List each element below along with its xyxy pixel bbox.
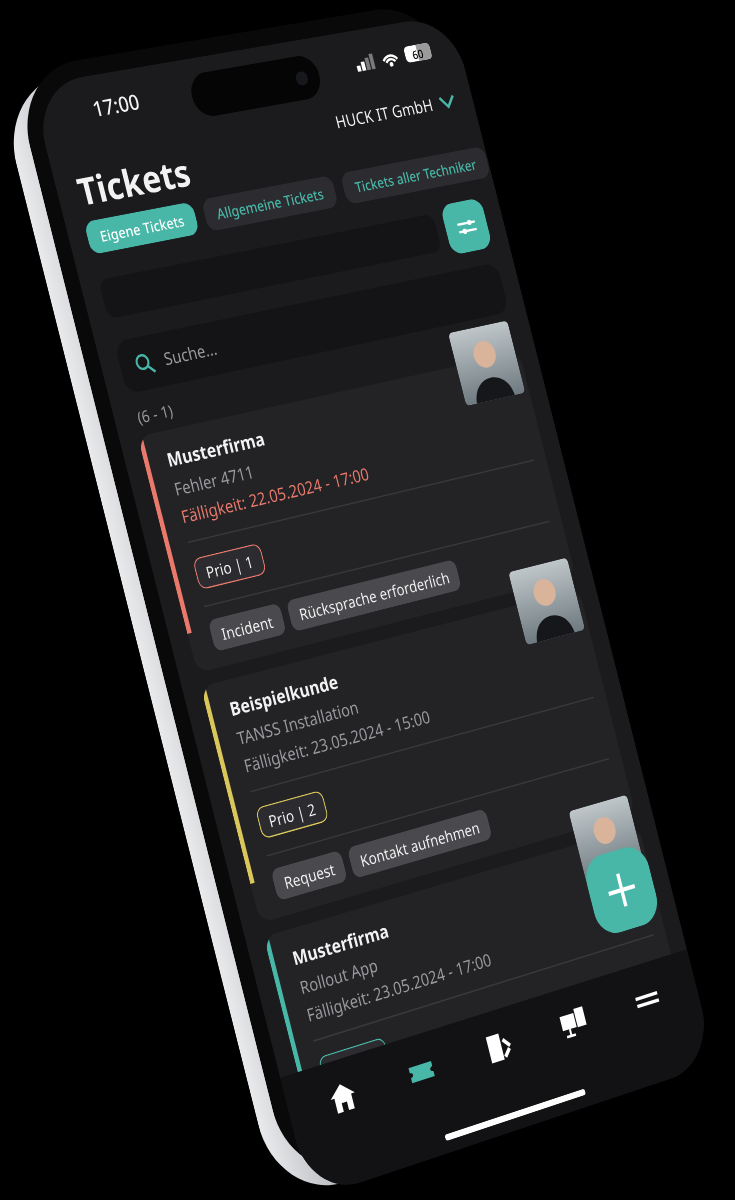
staticText: Tickets aller Techniker [353,154,478,196]
button[interactable]: Beispielkunde [200,589,636,923]
staticText: Tickets [72,146,196,216]
staticText: Beispielkunde [227,668,341,721]
staticText: Allgemeine Tickets [214,183,326,223]
button[interactable]: Tickets aller Techniker [340,146,491,205]
button[interactable]: Suche... [114,262,509,394]
staticText: 17:00 [89,87,142,124]
staticText: Prio | 1 [203,550,256,583]
staticText: (6 - 1) [135,399,176,428]
button[interactable]: Tickets [388,1033,455,1112]
button[interactable]: Request [270,850,348,901]
staticText: Rollout App [297,953,380,1000]
button[interactable]: Rücksprache erforderlich [286,559,462,632]
button[interactable]: Menü [616,962,679,1037]
button[interactable] [98,213,442,319]
staticText: Musterfirma [290,917,391,971]
button[interactable]: Prio | 2 [255,790,329,840]
button[interactable]: Musterfirma [138,352,576,673]
button[interactable]: Eigene Tickets [84,201,200,255]
button[interactable]: Neues Ticket [581,842,662,938]
button[interactable]: Incident [333,1096,411,1151]
staticText: Musterfirma [164,426,267,472]
button[interactable]: Home [309,1058,377,1137]
staticText: Incident [219,610,276,644]
button[interactable]: Bearbeiten [466,1009,531,1086]
staticText: Prio | 2 [266,797,318,831]
staticText: Request [282,858,337,893]
staticText: Fälligkeit: 23.05.2024 - 15:00 [241,704,432,778]
staticText: Fälligkeit: 23.05.2024 - 17:00 [304,947,494,1027]
staticText: Rücksprache erforderlich [297,566,451,624]
staticText: 60 [410,45,425,62]
staticText: TANSS Installation [234,695,361,750]
button[interactable]: Filter [440,197,493,256]
button[interactable]: Incident [208,603,287,652]
staticText: Prio | 3 [329,1045,381,1080]
button[interactable]: Kontakt aufnehmen [347,808,493,879]
button[interactable]: Prio | 1 [192,543,267,590]
staticText: Incident [344,1105,400,1142]
staticText: HUCK IT GmbH [333,93,436,134]
button[interactable]: Prio | 3 [318,1037,392,1089]
button[interactable]: Musterfirma [263,826,695,1174]
staticText: Eigene Tickets [98,210,186,246]
staticText: Fehler 4711 [172,459,257,501]
staticText: Kontakt aufnehmen [358,816,482,871]
button[interactable]: HUCK IT GmbH [333,89,457,133]
button[interactable]: Allgemeine Tickets [201,175,339,232]
staticText: Suche... [161,336,220,371]
staticText: Fälligkeit: 22.05.2024 - 17:00 [178,462,371,529]
button[interactable]: Geräte [541,985,606,1062]
